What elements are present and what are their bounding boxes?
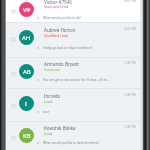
button[interactable]: Favourite [6,0,140,22]
staticText: Kowshik Bokka [44,125,76,131]
staticText: Aubree Horton [44,27,76,33]
staticText: AB [23,68,31,76]
staticText: Lead [44,99,52,104]
staticText: Visitor #7546 [44,0,72,5]
staticText: Customer [44,67,61,72]
other: Favourite [11,135,16,140]
button[interactable]: Favourite [6,23,140,57]
staticText: Nurtured Lead [44,4,69,9]
button[interactable]: Favourite [6,89,140,121]
staticText: Armando Bryant [44,61,79,67]
staticText: AH [22,34,31,42]
button[interactable]: Favourite [6,58,140,88]
staticText: Kindly go back to https://iandme.in [43,46,93,50]
other: Favourite [11,103,16,108]
staticText: I [25,100,28,108]
staticText: Qualified Lead [44,33,68,38]
staticText: V# [23,6,31,14]
staticText: What would you like to do? [43,16,81,20]
other: Favourite [11,71,16,76]
staticText: Incredo [44,93,61,99]
staticText: 2:03 PM [124,93,136,97]
staticText: 2:36 PM [124,61,136,65]
staticText: KB [23,132,31,140]
staticText: 1:34 PM [124,125,136,129]
staticText: You can get a trial account for 15 days … [43,78,110,82]
staticText: 4:01 PM [124,0,136,3]
other: Favourite [11,37,16,42]
other: Favourite [11,9,16,14]
staticText: Lead [44,131,52,136]
staticText: sure [43,110,50,114]
staticText: 4:22 PM [124,27,136,31]
staticText: When would you like to have the demo? [43,141,100,145]
button[interactable]: Favourite [6,122,140,150]
